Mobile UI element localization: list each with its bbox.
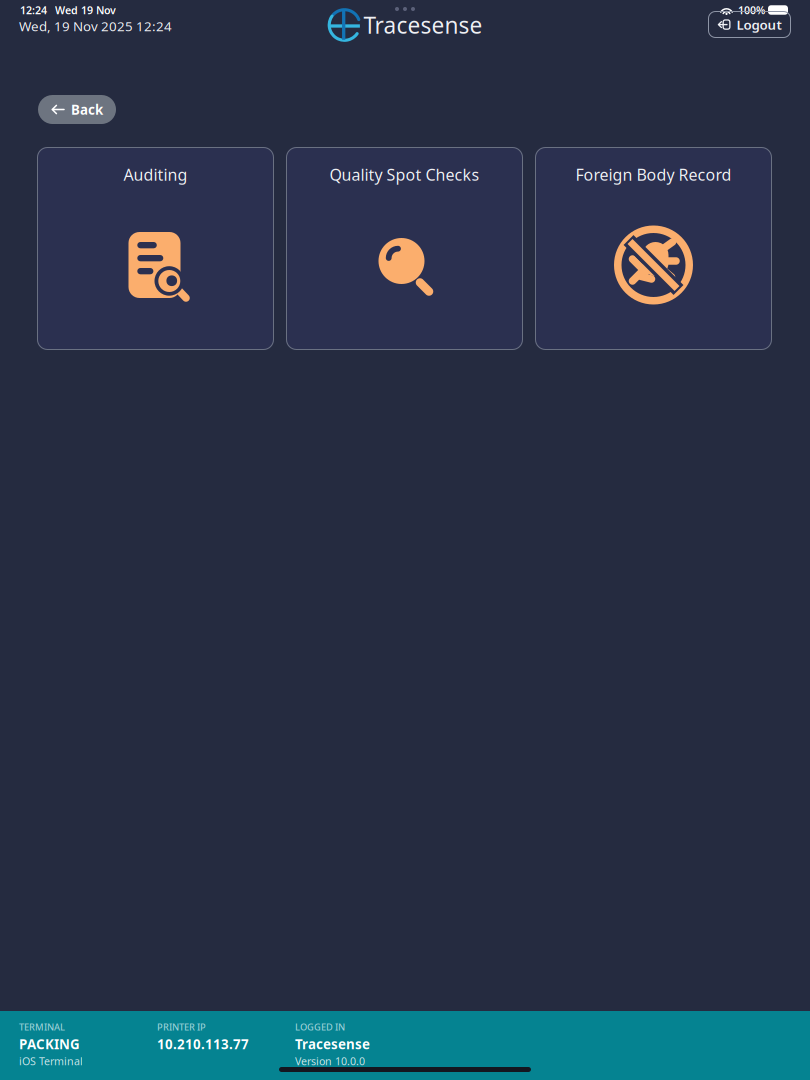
staticText: PRINTER IP [157, 1021, 206, 1033]
staticText: Version 10.0.0 [295, 1054, 365, 1068]
staticText: Wed, 19 Nov 2025 12:24 [19, 17, 172, 35]
staticText: 100% [738, 3, 765, 17]
staticText: Foreign Body Record [575, 164, 731, 185]
staticText: 12:24 [20, 3, 47, 17]
staticText: PACKING [19, 1035, 80, 1053]
staticText: Logout [736, 16, 781, 33]
staticText: 10.210.113.77 [157, 1035, 249, 1053]
staticText: Quality Spot Checks [329, 164, 479, 185]
button[interactable]: Foreign Body Record [535, 147, 772, 350]
staticText: LOGGED IN [295, 1021, 345, 1033]
staticText: Tracesense [295, 1035, 370, 1053]
staticText: TERMINAL [19, 1021, 65, 1033]
button[interactable]: Quality Spot Checks [286, 147, 523, 350]
button[interactable]: Back [38, 95, 116, 124]
button[interactable]: Auditing [37, 147, 274, 350]
staticText: Auditing [123, 164, 187, 185]
staticText: iOS Terminal [19, 1054, 83, 1068]
button[interactable]: Logout [708, 11, 791, 38]
staticText: Back [71, 101, 103, 118]
staticText: Wed 19 Nov [55, 3, 116, 17]
staticText: Tracesense [363, 10, 482, 40]
